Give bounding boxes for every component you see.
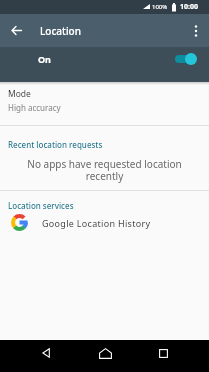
button[interactable] (183, 18, 209, 44)
button[interactable] (87, 340, 123, 372)
button[interactable]: Google Location History (0, 213, 209, 233)
staticText: No apps have requested location recently (0, 157, 209, 183)
staticText: Mode (8, 88, 31, 100)
staticText: 10:00 (180, 2, 198, 12)
staticText: On (38, 53, 51, 65)
staticText: High accuracy (8, 102, 61, 113)
button[interactable] (145, 340, 181, 372)
button[interactable] (28, 340, 64, 372)
staticText: Recent location requests (8, 139, 103, 150)
button[interactable]: On (0, 47, 209, 82)
staticText: 100% (152, 3, 168, 11)
staticText: Google Location History (42, 217, 151, 229)
button[interactable]: Mode (0, 85, 209, 119)
staticText: Location (40, 24, 81, 38)
staticText: Location services (8, 200, 74, 211)
button[interactable] (0, 14, 33, 47)
